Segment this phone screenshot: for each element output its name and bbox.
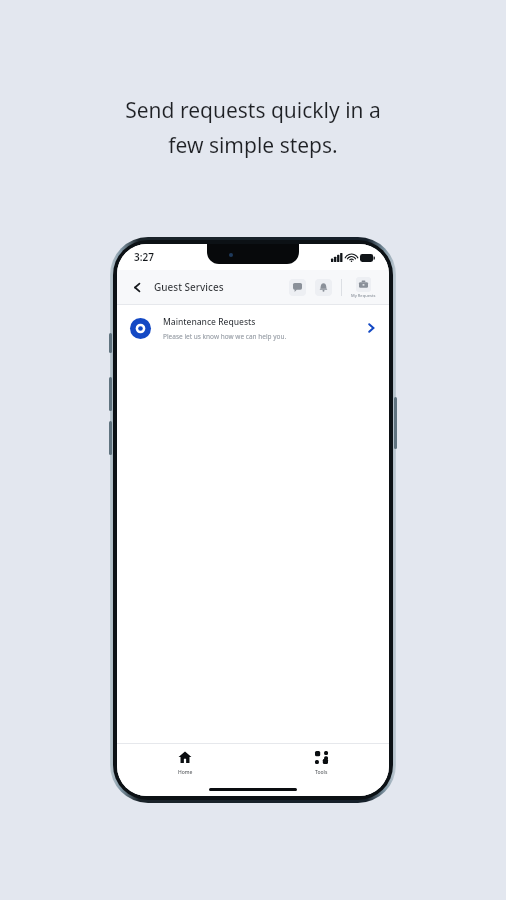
button[interactable]: Home bbox=[117, 750, 253, 776]
button[interactable]: Maintenance Requests bbox=[117, 305, 389, 351]
staticText: Guest Services bbox=[154, 280, 224, 294]
staticText: 3:27 bbox=[134, 250, 154, 264]
button[interactable]: Back bbox=[128, 278, 146, 296]
staticText: few simple steps. bbox=[168, 131, 338, 160]
button[interactable]: Tools bbox=[253, 751, 389, 776]
staticText: My Requests bbox=[351, 293, 376, 298]
staticText: Home bbox=[178, 769, 193, 776]
button[interactable]: My Requests bbox=[349, 277, 378, 298]
staticText: Send requests quickly in a bbox=[125, 96, 381, 125]
button[interactable]: Notifications bbox=[315, 279, 332, 296]
staticText: Tools bbox=[315, 769, 328, 776]
staticText: Please let us know how we can help you. bbox=[163, 332, 287, 341]
button[interactable]: Messages bbox=[289, 279, 306, 296]
staticText: Maintenance Requests bbox=[163, 316, 256, 328]
